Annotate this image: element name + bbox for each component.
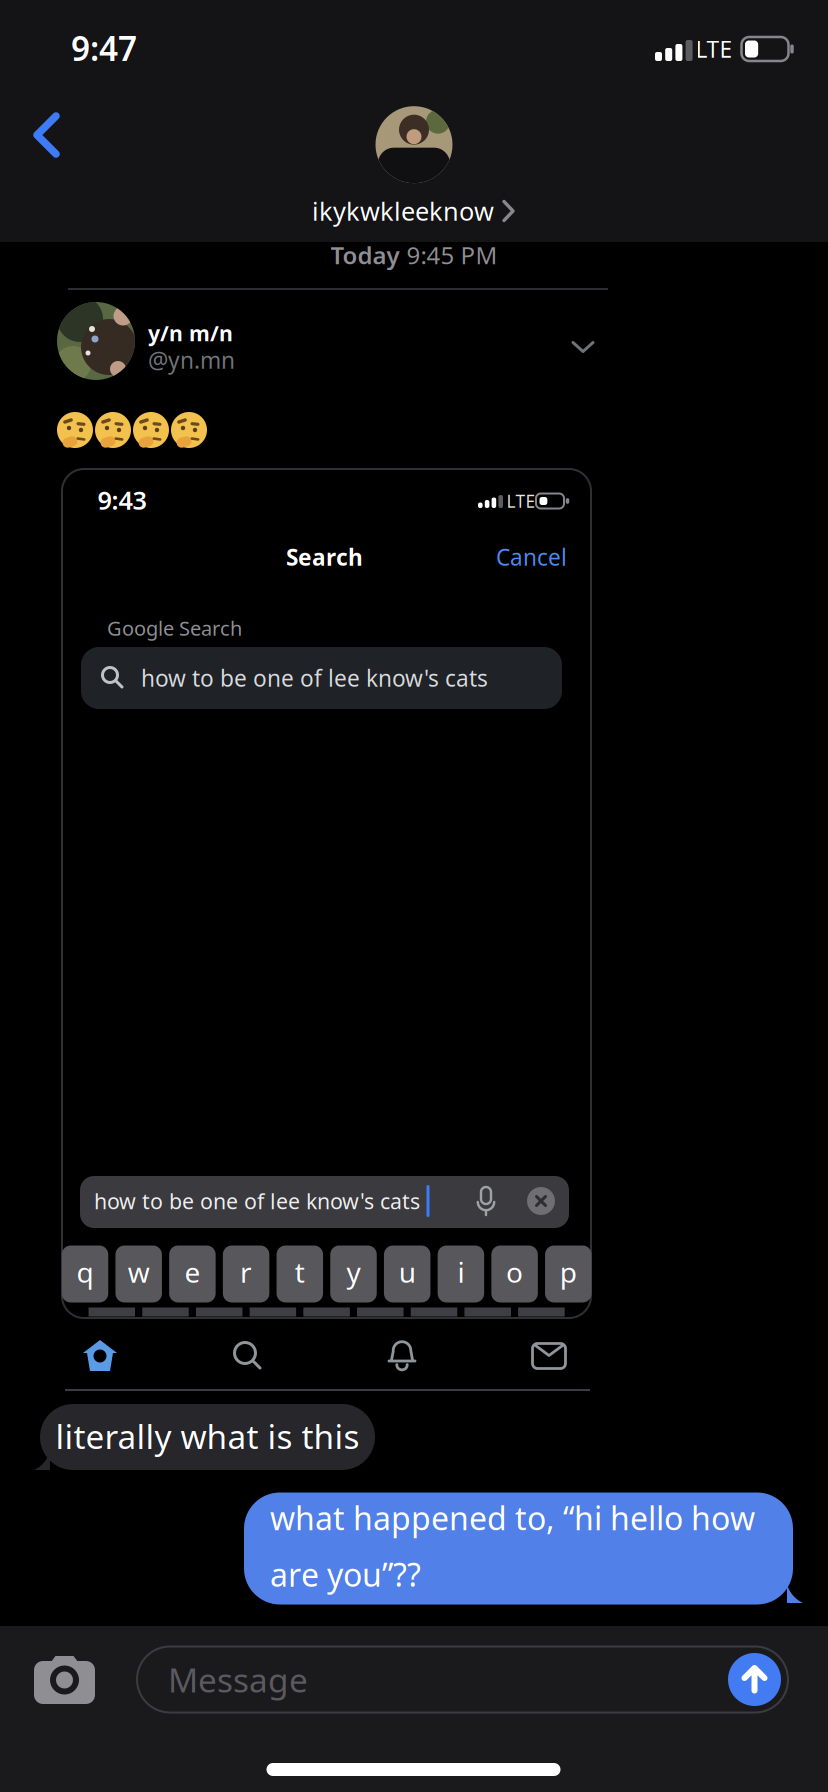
staticText: q [76, 1253, 93, 1291]
staticText: y [346, 1253, 360, 1291]
button[interactable]: Tweet screenshot attachment [40, 288, 612, 1392]
staticText: o [506, 1253, 523, 1291]
staticText: 9:47 [71, 26, 137, 70]
staticText: ikykwkleeknow [312, 194, 494, 228]
staticText: Cancel [496, 542, 567, 572]
staticText: 9:45 PM [406, 239, 497, 271]
staticText: how to be one of lee know's cats [94, 1187, 420, 1215]
staticText: i [457, 1253, 464, 1291]
staticText: e [184, 1253, 200, 1291]
staticText: how to be one of lee know's cats [141, 663, 488, 693]
button[interactable]: Send [728, 1653, 781, 1706]
staticText: p [560, 1253, 577, 1291]
staticText: literally what is this [55, 1414, 359, 1458]
staticText: are you”?? [270, 1553, 421, 1595]
staticText: LTE [506, 489, 535, 512]
staticText: Message [168, 1657, 308, 1702]
staticText: Google Search [107, 615, 242, 641]
staticText: w [128, 1253, 150, 1291]
staticText: t [295, 1253, 305, 1291]
button[interactable]: Back [33, 113, 59, 157]
button[interactable]: Message [137, 1646, 788, 1712]
staticText: Search [286, 542, 363, 572]
staticText: 9:43 [97, 483, 146, 517]
staticText: Today [330, 239, 399, 271]
button[interactable]: Camera [29, 1651, 99, 1707]
staticText: y/n m/n [148, 319, 233, 347]
staticText: r [240, 1253, 252, 1291]
staticText: @yn.mn [148, 345, 235, 375]
staticText: LTE [695, 34, 732, 64]
button[interactable]: ikykwkleeknow [312, 106, 516, 228]
staticText: u [399, 1253, 416, 1291]
staticText: what happened to, “hi hello how [270, 1496, 755, 1539]
